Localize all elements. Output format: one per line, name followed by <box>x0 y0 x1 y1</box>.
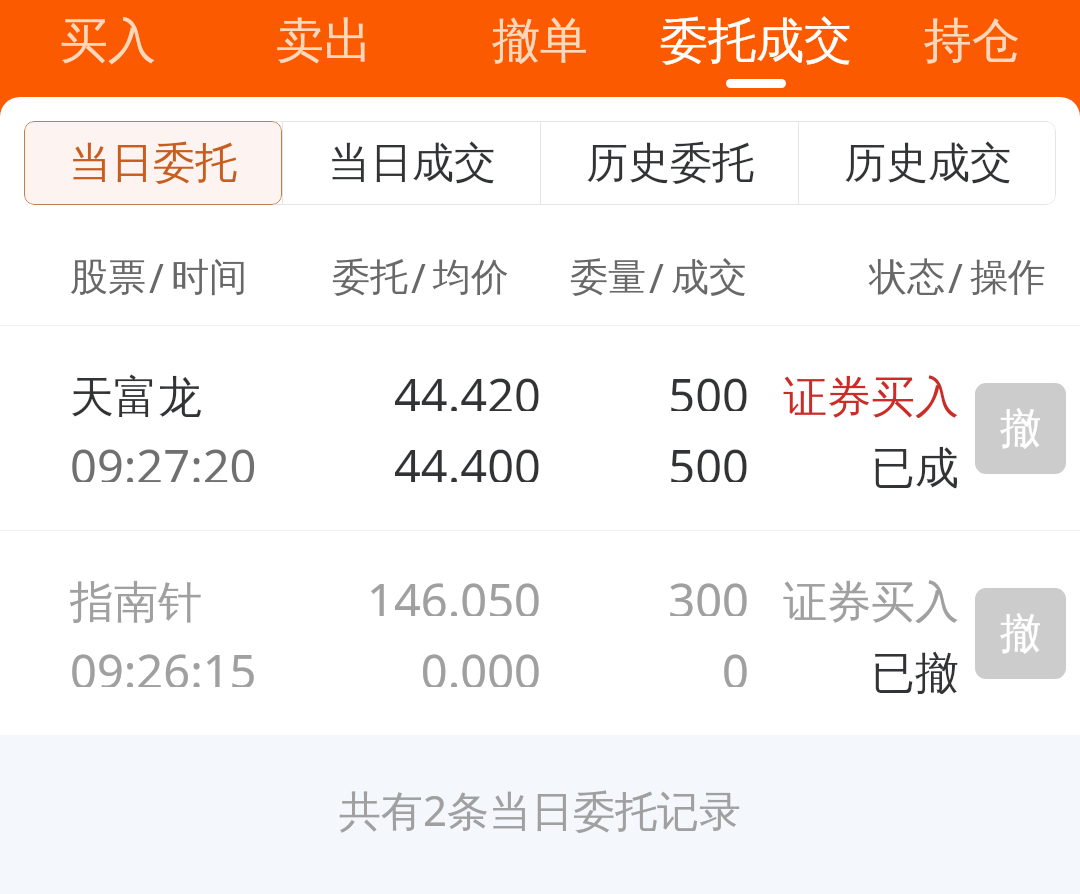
staticText: 0.000 <box>0 639 541 687</box>
button[interactable]: 撤单 <box>975 588 1066 679</box>
staticText: 146.050 <box>0 568 541 616</box>
staticText: 300 <box>0 568 749 616</box>
staticText: 委量 <box>570 253 646 301</box>
staticText: / <box>149 250 164 304</box>
button[interactable]: 撤单 <box>975 383 1066 474</box>
staticText: 当日委托 <box>69 137 237 190</box>
button[interactable]: 当日委托 <box>24 121 282 205</box>
staticText: 均价 <box>433 253 509 301</box>
staticText: 共有2条当日委托记录 <box>339 781 742 838</box>
staticText: 历史委托 <box>586 137 754 190</box>
staticText: 已撤 <box>0 646 959 694</box>
staticText: 成交 <box>671 253 747 301</box>
button[interactable]: 撤单 <box>432 0 648 97</box>
staticText: 证券买入 <box>0 575 959 623</box>
staticText: 已成 <box>0 441 959 489</box>
staticText: 44.400 <box>0 434 541 482</box>
button[interactable]: 历史成交 <box>799 121 1056 205</box>
staticText: 历史成交 <box>844 137 1012 190</box>
staticText: 撤 <box>1000 608 1041 660</box>
staticText: 指南针 <box>70 575 202 623</box>
staticText: 撤单 <box>492 11 588 71</box>
button[interactable]: 买入 <box>0 0 216 97</box>
staticText: 持仓 <box>924 11 1020 71</box>
staticText: 撤 <box>1000 403 1041 455</box>
staticText: 证券买入 <box>0 370 959 418</box>
button[interactable]: 历史委托 <box>541 121 798 205</box>
staticText: 09:27:20 <box>70 434 257 482</box>
staticText: 当日成交 <box>328 137 496 190</box>
button[interactable]: 天富龙 <box>0 326 1080 530</box>
staticText: 状态 <box>869 253 945 301</box>
staticText: 卖出 <box>276 11 372 71</box>
staticText: 委托成交 <box>660 11 852 71</box>
staticText: 500 <box>0 434 749 482</box>
staticText: 操作 <box>970 253 1046 301</box>
staticText: 09:26:15 <box>70 639 257 687</box>
staticText: 当日委托 <box>69 137 237 190</box>
staticText: 44.420 <box>0 363 541 411</box>
staticText: 天富龙 <box>70 370 202 418</box>
staticText: 500 <box>0 363 749 411</box>
button[interactable]: 卖出 <box>216 0 432 97</box>
staticText: / <box>948 250 963 304</box>
staticText: 股票 <box>70 253 146 301</box>
button[interactable]: 当日成交 <box>283 121 540 205</box>
staticText: 买入 <box>60 11 156 71</box>
staticText: 时间 <box>171 253 247 301</box>
staticText: 0 <box>0 639 749 687</box>
staticText: / <box>411 250 426 304</box>
button[interactable]: 持仓 <box>864 0 1080 97</box>
button[interactable]: 指南针 <box>0 531 1080 735</box>
staticText: 委托 <box>332 253 408 301</box>
button[interactable]: 当日委托 <box>24 121 282 205</box>
staticText: / <box>649 250 664 304</box>
button[interactable]: 委托成交 <box>648 0 864 97</box>
